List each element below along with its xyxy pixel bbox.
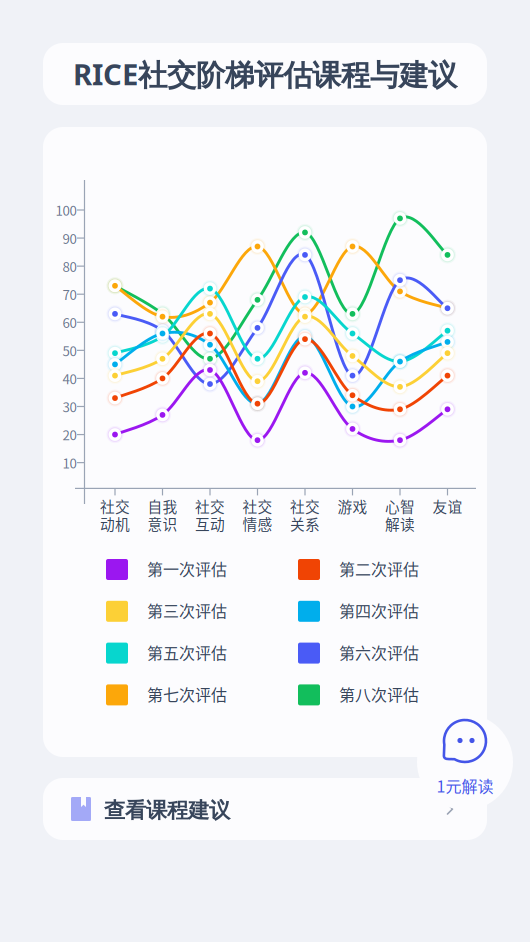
staticText: 1元解读 — [436, 774, 493, 797]
button[interactable]: 1元解读 — [417, 714, 513, 810]
staticText: 80 — [62, 256, 76, 276]
staticText: 第七次评估 — [147, 682, 227, 706]
staticText: 20 — [62, 425, 76, 444]
staticText: RICE社交阶梯评估课程与建议 — [73, 54, 457, 94]
staticText: 关系 — [290, 513, 320, 534]
button[interactable]: 第五次评估 — [106, 641, 251, 666]
staticText: 40 — [62, 369, 76, 388]
staticText: 友谊 — [432, 495, 462, 517]
staticText: 游戏 — [337, 495, 367, 517]
staticText: 社交 — [100, 495, 130, 517]
staticText: 30 — [62, 397, 76, 416]
button[interactable]: 第四次评估 — [298, 599, 443, 624]
staticText: 第一次评估 — [147, 557, 227, 580]
button[interactable]: 查看课程建议 — [43, 778, 487, 840]
button[interactable]: 第三次评估 — [106, 599, 251, 624]
staticText: 50 — [62, 341, 76, 360]
button[interactable]: 第七次评估 — [106, 682, 251, 707]
staticText: 心智 — [385, 495, 415, 517]
staticText: 意识 — [147, 513, 177, 534]
staticText: 90 — [62, 228, 76, 248]
staticText: 互动 — [195, 513, 225, 534]
staticText: 动机 — [100, 513, 130, 534]
staticText: 第三次评估 — [147, 599, 227, 622]
staticText: 10 — [62, 453, 76, 472]
staticText: 第四次评估 — [339, 599, 419, 622]
staticText: 社交 — [290, 495, 320, 517]
staticText: 第五次评估 — [147, 641, 227, 664]
staticText: 自我 — [147, 495, 177, 517]
button[interactable]: 第六次评估 — [298, 641, 443, 666]
staticText: 100 — [55, 200, 76, 220]
staticText: 情感 — [242, 513, 272, 534]
button[interactable]: 第二次评估 — [298, 557, 443, 582]
staticText: 70 — [62, 285, 76, 304]
button[interactable]: 第八次评估 — [298, 682, 443, 707]
staticText: 社交 — [242, 495, 272, 517]
staticText: 第八次评估 — [339, 682, 419, 706]
button[interactable]: 第一次评估 — [106, 557, 251, 582]
staticText: 查看课程建议 — [104, 797, 230, 824]
staticText: 解读 — [385, 513, 415, 534]
staticText: 社交 — [195, 495, 225, 517]
staticText: 60 — [62, 313, 76, 332]
staticText: 第六次评估 — [339, 641, 419, 664]
staticText: 第二次评估 — [339, 557, 419, 580]
